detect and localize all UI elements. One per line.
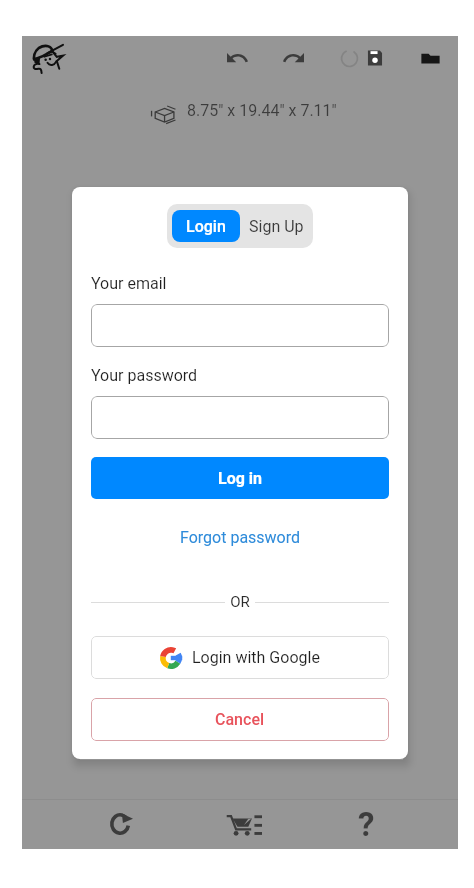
- button[interactable]: Cart: [220, 801, 268, 849]
- staticText: Log in: [218, 469, 263, 488]
- staticText: Forgot password: [180, 528, 301, 547]
- staticText: Sign Up: [249, 217, 304, 236]
- staticText: Login with Google: [192, 648, 320, 667]
- button[interactable]: Redo: [276, 41, 310, 75]
- staticText: OR: [225, 593, 255, 611]
- button[interactable]: Log in: [91, 457, 389, 499]
- staticText: ?: [358, 805, 375, 844]
- staticText: Your password: [91, 366, 198, 385]
- button[interactable]: Cancel: [91, 698, 389, 741]
- button[interactable]: Save: [358, 41, 392, 75]
- button[interactable]: Forgot password: [91, 517, 389, 557]
- button[interactable]: App logo: [25, 36, 69, 80]
- staticText: Login: [186, 217, 226, 236]
- button[interactable]: Login: [172, 210, 240, 242]
- button[interactable]: Sign Up: [240, 210, 313, 242]
- button[interactable]: [91, 396, 389, 439]
- button[interactable]: [91, 304, 389, 347]
- staticText: Cancel: [215, 710, 265, 729]
- button[interactable]: Login with Google: [91, 636, 389, 679]
- button[interactable]: Open folder: [413, 41, 447, 75]
- staticText: 8.75" x 19.44" x 7.11": [187, 101, 337, 120]
- button[interactable]: Help: [342, 801, 390, 849]
- button[interactable]: Refresh: [97, 800, 145, 848]
- staticText: Your email: [91, 274, 167, 293]
- button[interactable]: Reload: [332, 41, 366, 75]
- button[interactable]: Undo: [220, 41, 254, 75]
